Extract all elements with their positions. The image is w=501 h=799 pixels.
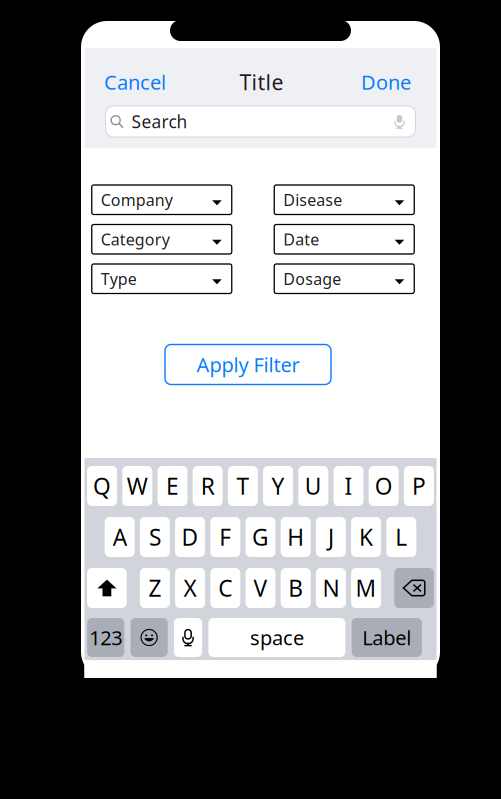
staticText: L [395, 522, 407, 552]
button[interactable]: D [175, 517, 205, 557]
staticText: E [166, 471, 179, 501]
button[interactable]: W [122, 466, 152, 506]
button[interactable]: Q [87, 466, 117, 506]
button[interactable]: Z [140, 568, 170, 608]
staticText: D [182, 522, 199, 552]
button[interactable]: Type [92, 264, 232, 293]
staticText: Z [148, 573, 161, 603]
button[interactable]: Disease [274, 185, 414, 214]
button[interactable]: K [351, 517, 381, 557]
button[interactable]: A [105, 517, 135, 557]
button[interactable]: F [210, 517, 240, 557]
staticText: Type [101, 268, 137, 289]
button[interactable]: X [175, 568, 205, 608]
button[interactable]: Date [274, 224, 414, 254]
staticText: A [113, 522, 127, 552]
staticText: Y [272, 471, 285, 501]
button[interactable]: Y [263, 466, 293, 506]
button[interactable]: N [316, 568, 346, 608]
staticText: Company [101, 189, 173, 210]
staticText: Label [362, 624, 411, 651]
staticText: R [201, 471, 215, 501]
button[interactable]: H [281, 517, 311, 557]
staticText: Disease [283, 189, 342, 210]
button[interactable]: V [245, 568, 275, 608]
staticText: 123 [89, 624, 122, 651]
button[interactable]: Cancel [104, 71, 166, 93]
button[interactable]: C [210, 568, 240, 608]
staticText: Cancel [104, 69, 166, 95]
staticText: W [127, 471, 148, 501]
button[interactable]: 123 [87, 618, 124, 657]
staticText: K [359, 522, 373, 552]
staticText: J [328, 522, 334, 552]
button[interactable]: P [404, 466, 434, 506]
button[interactable]: Company [92, 185, 232, 214]
button[interactable]: M [351, 568, 381, 608]
button[interactable]: U [298, 466, 328, 506]
staticText: V [253, 573, 267, 603]
staticText: Date [283, 229, 319, 250]
staticText: Category [101, 229, 170, 250]
staticText: space [250, 624, 304, 651]
staticText: Q [93, 471, 111, 501]
staticText: U [305, 471, 322, 501]
button[interactable]: E [157, 466, 187, 506]
staticText: Title [239, 68, 283, 96]
staticText: M [356, 573, 377, 603]
button[interactable]: R [193, 466, 223, 506]
staticText: P [412, 471, 426, 501]
button[interactable]: Shift [87, 568, 127, 608]
button[interactable]: Delete [394, 568, 434, 608]
staticText: T [236, 471, 249, 501]
staticText: Search [131, 110, 187, 133]
button[interactable]: Category [92, 224, 232, 254]
button[interactable]: I [333, 466, 363, 506]
button[interactable]: Dosage [274, 264, 414, 293]
button[interactable]: O [369, 466, 399, 506]
staticText: S [149, 522, 161, 552]
button[interactable]: G [245, 517, 275, 557]
staticText: Done [361, 69, 411, 95]
button[interactable]: T [228, 466, 258, 506]
button[interactable]: Dictate [174, 618, 202, 657]
button[interactable]: S [140, 517, 170, 557]
staticText: I [344, 471, 352, 501]
button[interactable]: Apply Filter [165, 344, 331, 384]
button[interactable]: Label [352, 618, 422, 657]
staticText: X [184, 573, 197, 603]
staticText: Dosage [283, 268, 341, 289]
button[interactable]: Emoji [130, 618, 168, 657]
staticText: G [252, 522, 269, 552]
staticText: N [322, 573, 339, 603]
staticText: O [375, 471, 393, 501]
staticText: Apply Filter [196, 351, 299, 378]
staticText: H [287, 522, 304, 552]
staticText: F [219, 522, 231, 552]
button[interactable]: L [386, 517, 416, 557]
button[interactable]: space [208, 618, 345, 657]
button[interactable]: J [316, 517, 346, 557]
staticText: B [288, 573, 303, 603]
button[interactable]: Done [361, 71, 411, 93]
button[interactable]: B [281, 568, 311, 608]
staticText: C [218, 573, 232, 603]
